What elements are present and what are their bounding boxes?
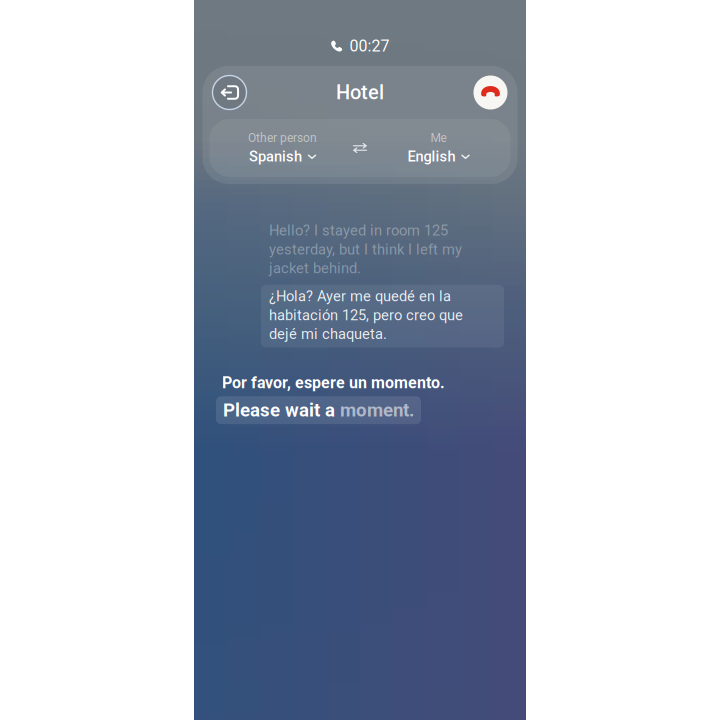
button[interactable]: Other person (218, 119, 346, 177)
staticText: Hotel (336, 81, 384, 104)
staticText: 00:27 (349, 37, 389, 55)
staticText: moment. (340, 399, 414, 421)
staticText: Please wait a (223, 399, 340, 421)
staticText: Hello? I stayed in room 125 yesterday, b… (269, 222, 462, 277)
staticText: ¿Hola? Ayer me quedé en la habitación 12… (269, 288, 463, 343)
button[interactable]: Swap languages (340, 119, 380, 177)
button[interactable]: Leave call (205, 68, 253, 116)
staticText: Other person (248, 131, 317, 145)
staticText: Spanish (249, 148, 302, 165)
button[interactable]: Me (374, 119, 502, 177)
staticText: Por favor, espere un momento. (222, 373, 445, 392)
button[interactable]: End call (466, 68, 514, 116)
staticText: Me (430, 131, 446, 145)
staticText: English (407, 148, 455, 165)
